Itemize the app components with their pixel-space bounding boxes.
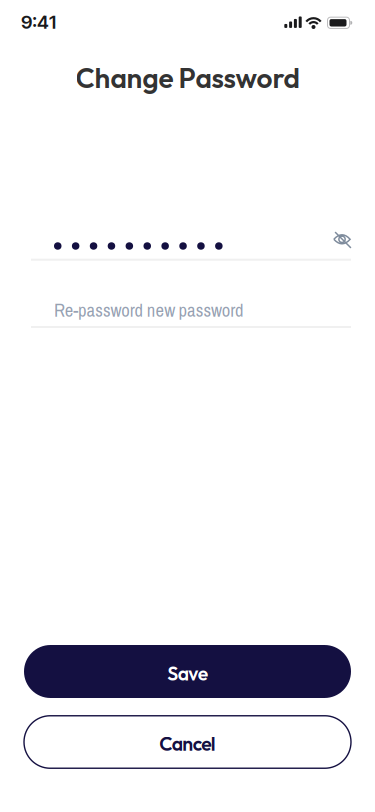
staticText: Re-password new password — [54, 297, 244, 322]
staticText: Change Password — [75, 60, 299, 95]
button[interactable]: Save — [24, 645, 351, 698]
staticText: 9:41 — [21, 11, 56, 33]
staticText: Cancel — [159, 731, 216, 756]
button[interactable]: Show password — [330, 227, 354, 251]
button[interactable]: Cancel — [24, 716, 351, 768]
staticText: Save — [167, 661, 208, 685]
